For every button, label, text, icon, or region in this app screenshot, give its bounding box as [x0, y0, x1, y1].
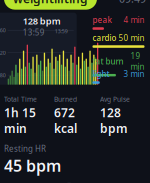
staticText: Total Time: [4, 95, 37, 104]
staticText: 80: [0, 72, 6, 79]
staticText: cardio: [92, 33, 116, 43]
staticText: 4 min: [123, 15, 144, 25]
staticText: 09:49: [119, 0, 146, 6]
staticText: weightlifting: [13, 0, 88, 7]
staticText: 13:59: [55, 28, 68, 35]
staticText: Burned: [54, 95, 77, 104]
staticText: 50 min: [118, 33, 144, 43]
staticText: 13:59: [23, 27, 45, 38]
staticText: 160: [0, 27, 6, 34]
staticText: 120: [0, 49, 6, 56]
staticText: 128 bpm: [23, 15, 61, 27]
staticText: peak: [92, 15, 111, 25]
staticText: 672 kcal: [54, 104, 77, 136]
staticText: fat burn: [92, 56, 123, 67]
staticText: Resting HR: [4, 143, 46, 154]
button[interactable]: weightlifting: [4, 0, 97, 10]
staticText: light: [92, 69, 109, 79]
staticText: 128 bpm: [100, 104, 128, 136]
staticText: 19 min: [130, 51, 144, 72]
staticText: 3 min: [123, 69, 144, 79]
staticText: Avg Pulse: [100, 95, 130, 104]
staticText: 1h 15 min: [4, 104, 36, 136]
staticText: 45 bpm: [4, 155, 61, 176]
